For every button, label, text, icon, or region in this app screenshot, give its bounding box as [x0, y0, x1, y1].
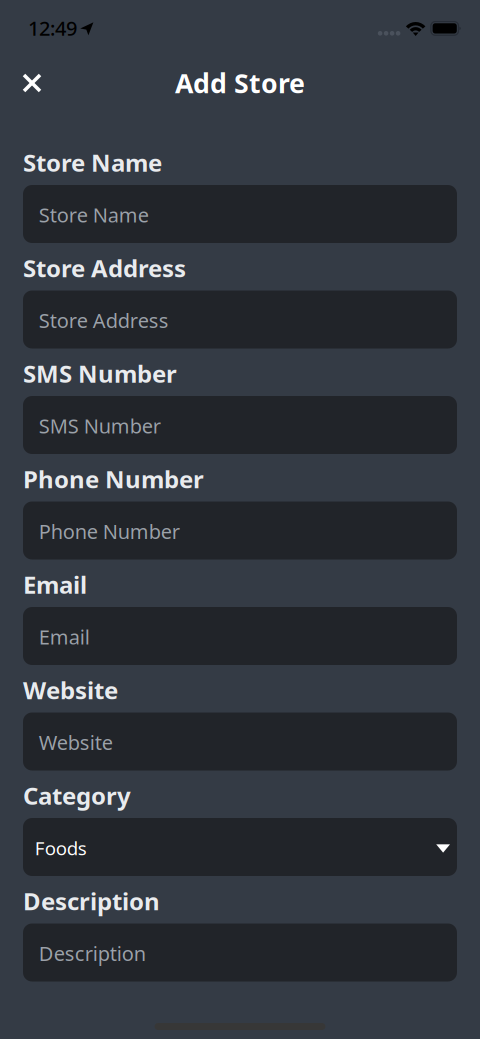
staticText: Foods — [35, 836, 87, 860]
staticText: SMS Number — [39, 412, 161, 439]
staticText: Store Address — [39, 307, 169, 334]
staticText: Store Name — [39, 201, 149, 228]
button[interactable]: Description — [23, 923, 457, 981]
button[interactable]: Phone Number — [23, 501, 457, 559]
staticText: Phone Number — [39, 518, 180, 545]
button[interactable]: Website — [23, 712, 457, 770]
staticText: Email — [23, 569, 87, 600]
staticText: Add Store — [175, 65, 305, 101]
button[interactable]: Email — [23, 607, 457, 665]
staticText: Store Name — [23, 147, 162, 178]
staticText: Store Address — [23, 252, 186, 284]
staticText: Phone Number — [23, 463, 204, 495]
staticText: Description — [39, 940, 146, 967]
staticText: Description — [23, 885, 160, 917]
button[interactable]: Store Address — [23, 290, 457, 348]
staticText: Email — [39, 623, 90, 650]
button[interactable]: Foods — [23, 818, 457, 876]
staticText: Category — [23, 780, 131, 811]
button[interactable]: Store Name — [23, 185, 457, 243]
staticText: Website — [39, 729, 113, 756]
staticText: SMS Number — [23, 358, 177, 389]
button[interactable]: Close — [10, 61, 54, 105]
staticText: 12:49 — [28, 15, 77, 41]
staticText: Website — [23, 674, 118, 706]
button[interactable]: SMS Number — [23, 396, 457, 454]
